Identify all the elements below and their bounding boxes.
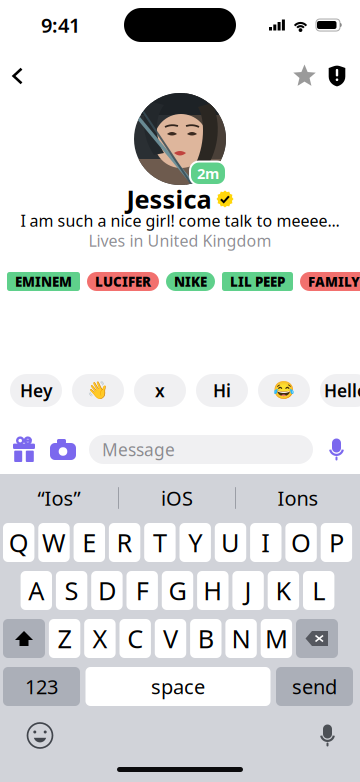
button[interactable]: x [134,374,186,407]
button[interactable]: 👋 [72,374,124,407]
button[interactable]: D [91,571,123,610]
button[interactable]: S [56,571,87,610]
button[interactable]: 123 [3,667,80,706]
staticText: Hey [20,379,52,402]
button[interactable]: I [250,523,281,562]
staticText: EMINEM [15,273,72,290]
button[interactable]: Emoji [0,714,63,757]
button[interactable]: L [303,571,334,610]
button[interactable]: 😂 [258,374,310,407]
button[interactable]: Report [328,50,360,93]
staticText: W [42,526,66,559]
button[interactable]: V [155,619,186,658]
button[interactable]: H [197,571,228,610]
button[interactable]: Voice message [313,438,359,461]
staticText: Jessica [126,182,211,216]
button[interactable]: NIKE [166,272,215,291]
staticText: Y [188,526,202,559]
button[interactable]: X [84,619,116,658]
staticText: LUCIFER [95,273,151,290]
button[interactable]: M [261,619,292,658]
staticText: B [198,622,214,655]
staticText: 123 [25,673,58,700]
button[interactable]: Z [49,619,80,658]
staticText: G [168,574,186,607]
button[interactable]: Y [179,523,211,562]
button[interactable]: “Ios” [0,473,118,522]
button[interactable]: G [162,571,193,610]
staticText: C [127,622,143,655]
button[interactable]: R [109,523,140,562]
button[interactable]: U [215,523,246,562]
staticText: S [65,574,79,607]
staticText: D [98,574,116,607]
button[interactable]: Back [0,50,37,93]
button[interactable]: Delete [296,619,338,658]
button[interactable]: Favorite [284,50,328,93]
staticText: R [117,526,133,559]
button[interactable]: LIL PEEP [222,272,293,291]
button[interactable]: Hey [10,374,62,407]
button[interactable]: Message [89,435,313,464]
staticText: U [221,526,240,559]
button[interactable]: Hi [196,374,248,407]
button[interactable]: FAMILY GUY [300,272,360,291]
button[interactable]: send [276,667,353,706]
staticText: F [136,574,149,607]
staticText: Hello [324,379,360,402]
button[interactable]: N [225,619,257,658]
button[interactable]: Q [3,523,34,562]
staticText: H [203,574,222,607]
staticText: A [28,574,44,607]
staticText: L [312,574,325,607]
button[interactable]: Hello [320,374,360,407]
staticText: 2m [197,163,219,183]
button[interactable]: B [190,619,221,658]
staticText: Hi [213,379,231,402]
button[interactable]: W [38,523,70,562]
staticText: I am such a nice girl! come talk to meee… [20,210,339,231]
button[interactable]: LUCIFER [87,272,159,291]
button[interactable]: J [232,571,264,610]
button[interactable]: EMINEM [7,272,80,291]
button[interactable]: O [285,523,317,562]
staticText: space [151,673,205,700]
button[interactable]: Shift [3,619,45,658]
staticText: Q [9,526,29,559]
staticText: FAMILY GUY [308,273,360,290]
staticText: N [232,622,251,655]
button[interactable]: K [268,571,299,610]
staticText: Lives in United Kingdom [88,230,271,251]
staticText: x [155,379,165,402]
staticText: Message [102,438,175,461]
staticText: “Ios” [37,485,80,511]
staticText: O [291,526,311,559]
button[interactable]: Camera [50,439,89,460]
staticText: 👋 [87,381,109,400]
staticText: P [329,526,344,559]
staticText: send [292,673,337,700]
button[interactable]: A [21,571,52,610]
staticText: iOS [161,485,193,511]
staticText: J [245,574,252,607]
staticText: 😂 [273,381,295,400]
staticText: V [163,622,178,655]
staticText: Ions [277,485,318,511]
button[interactable]: E [74,523,105,562]
staticText: E [82,526,96,559]
button[interactable]: Ions [236,473,360,522]
button[interactable]: Dictation [309,714,360,757]
staticText: M [265,622,288,655]
button[interactable]: F [126,571,158,610]
staticText: T [153,526,167,559]
button[interactable]: P [321,523,352,562]
button[interactable]: C [119,619,151,658]
staticText: 9:41 [41,12,80,38]
staticText: NIKE [174,273,207,290]
button[interactable]: space [85,667,270,706]
button[interactable]: T [144,523,176,562]
staticText: Z [58,622,72,655]
button[interactable]: iOS [119,473,235,522]
button[interactable]: Send gift [1,437,50,462]
staticText: K [275,574,291,607]
